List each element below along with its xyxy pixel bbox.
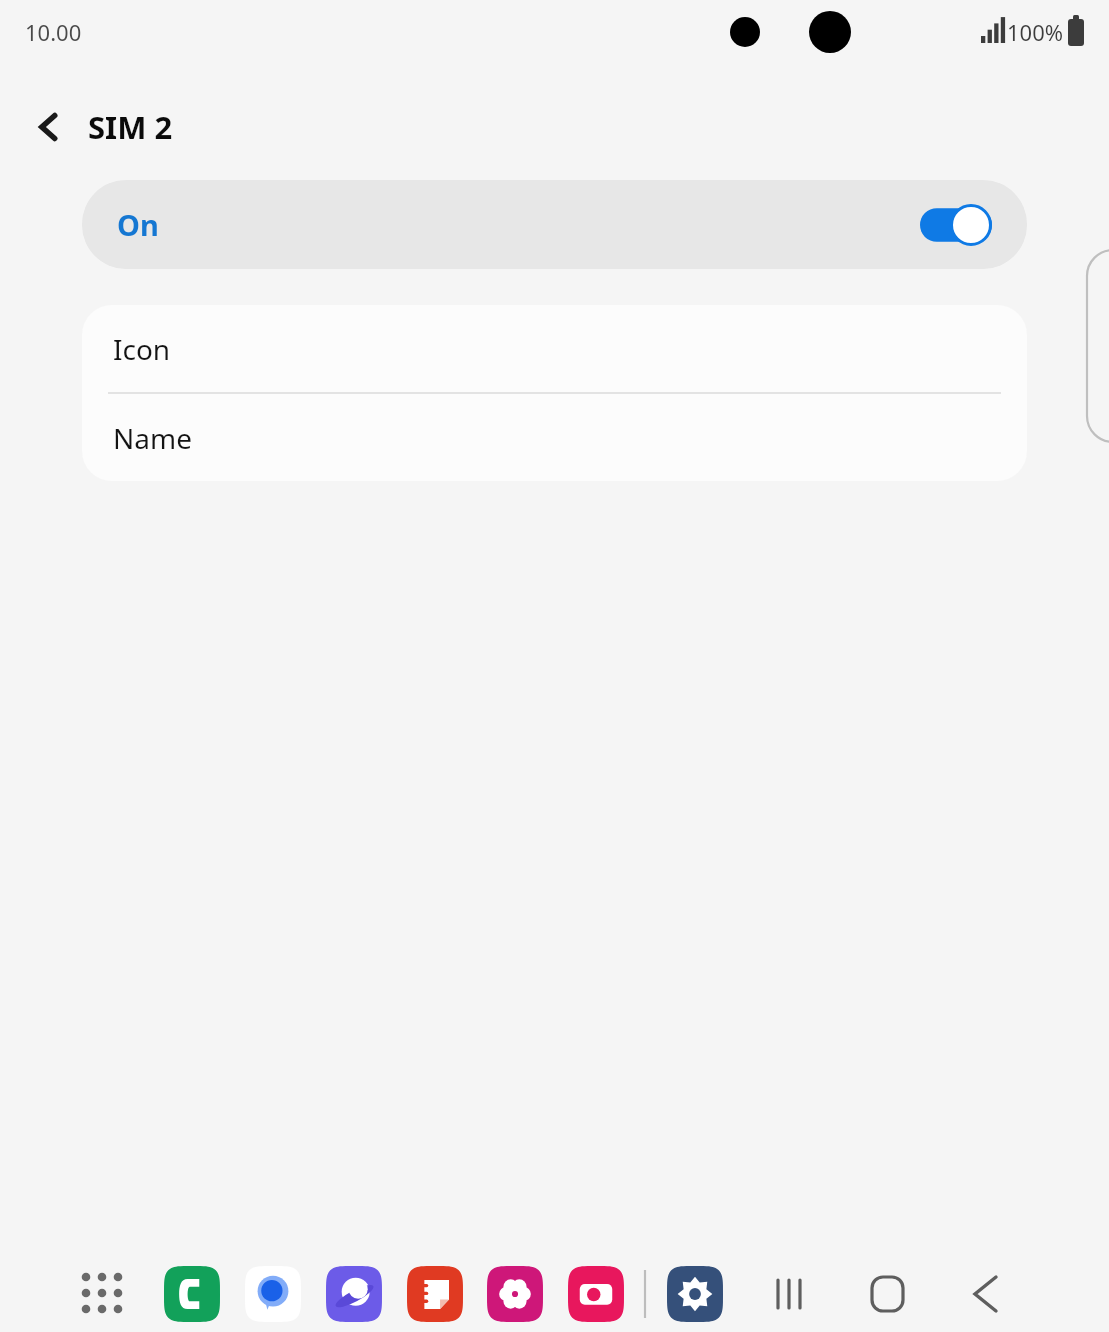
button[interactable]: On	[82, 180, 1027, 269]
button[interactable]: Back	[20, 98, 78, 156]
button[interactable]: Icon	[82, 305, 1027, 392]
staticText: Name	[113, 419, 192, 457]
button[interactable]: Messages	[218, 1256, 288, 1332]
staticText: 10.00	[25, 17, 82, 47]
button[interactable]: Home	[862, 1256, 924, 1332]
button[interactable]: Back	[962, 1256, 1024, 1332]
staticText: SIM 2	[88, 106, 173, 148]
button[interactable]: Name	[82, 394, 1027, 481]
button[interactable]: Gallery	[458, 1256, 528, 1332]
staticText: On	[117, 205, 159, 244]
staticText: 100%	[1007, 17, 1064, 47]
button[interactable]: Camera	[538, 1256, 608, 1332]
button[interactable]: Apps	[60, 1256, 116, 1332]
staticText: Icon	[113, 330, 171, 368]
button[interactable]: Internet	[298, 1256, 368, 1332]
button[interactable]: Phone	[138, 1256, 208, 1332]
button[interactable]: Notes	[378, 1256, 448, 1332]
button[interactable]: Recents	[762, 1256, 824, 1332]
button[interactable]: Settings	[650, 1256, 720, 1332]
